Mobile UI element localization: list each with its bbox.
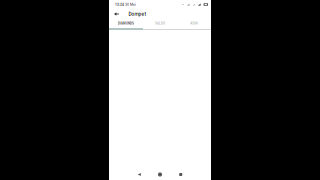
staticText: Dompet xyxy=(128,11,146,17)
button[interactable]: Back xyxy=(113,10,120,18)
staticText: 30 Mei xyxy=(124,2,136,6)
button[interactable]: DIAMONDS xyxy=(109,19,143,30)
staticText: DIAMONDS xyxy=(118,22,134,25)
staticText: 13:24 xyxy=(115,2,124,6)
button[interactable]: Recents xyxy=(175,170,187,179)
button[interactable]: SALDO xyxy=(143,19,177,30)
staticText: SALDO xyxy=(155,22,165,25)
button[interactable]: KOIN xyxy=(177,19,211,30)
staticText: KOIN xyxy=(190,22,197,25)
button[interactable]: Home xyxy=(154,170,166,179)
button[interactable]: Back xyxy=(133,170,145,179)
